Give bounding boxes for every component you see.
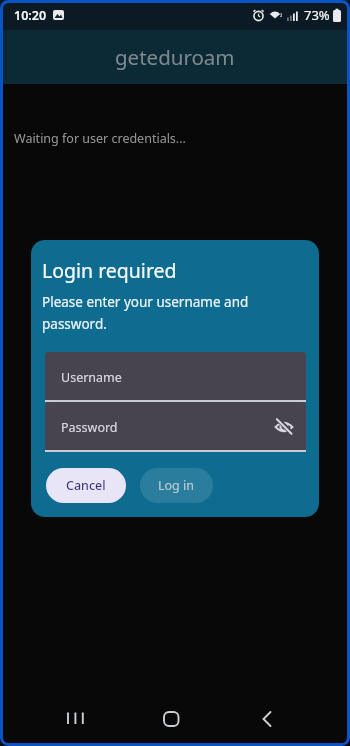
staticText: Password bbox=[61, 419, 118, 436]
staticText: Waiting for user credentials... bbox=[14, 130, 186, 147]
staticText: Username bbox=[61, 369, 122, 386]
staticText: Please enter your username and password. bbox=[42, 293, 249, 333]
staticText: geteduroam bbox=[115, 43, 235, 71]
button[interactable]: Username bbox=[45, 352, 306, 402]
button[interactable]: Password bbox=[45, 402, 306, 452]
staticText: Login required bbox=[42, 257, 177, 284]
button[interactable]: Cancel bbox=[46, 468, 126, 503]
staticText: 10:20 bbox=[14, 7, 47, 24]
staticText: Log in bbox=[158, 477, 195, 494]
button[interactable]: Log in bbox=[140, 468, 213, 503]
staticText: Cancel bbox=[66, 477, 106, 494]
button[interactable] bbox=[67, 712, 85, 725]
button[interactable] bbox=[261, 711, 273, 727]
button[interactable] bbox=[163, 711, 180, 727]
staticText: 73% bbox=[304, 6, 330, 24]
